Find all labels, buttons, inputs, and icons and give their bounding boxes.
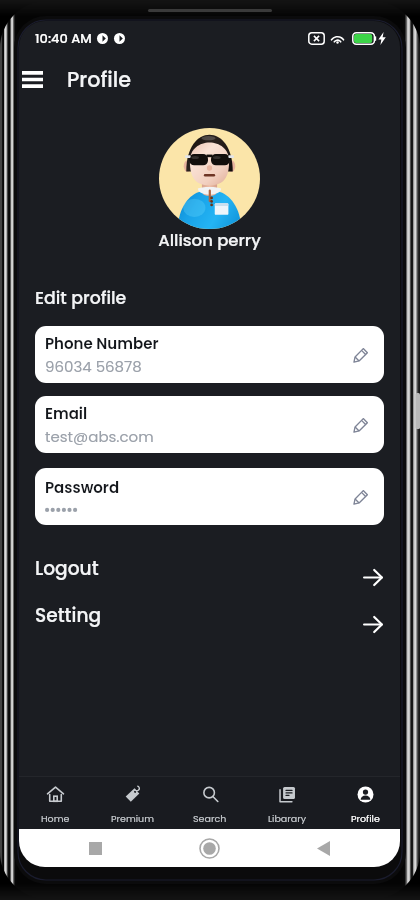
button[interactable]: Email <box>35 396 384 453</box>
button[interactable]: Setting <box>19 598 400 632</box>
staticText: Phone Number <box>45 333 159 354</box>
staticText: Profile <box>351 812 380 825</box>
staticText: Premium <box>111 812 154 825</box>
staticText: Logout <box>35 555 99 581</box>
button[interactable]: Libarary <box>257 777 317 829</box>
staticText: test@abs.com <box>45 426 154 447</box>
button[interactable]: Edit Password <box>347 483 375 511</box>
staticText: 96034 56878 <box>45 356 142 377</box>
staticText: Search <box>193 812 227 825</box>
staticText: 10:40 AM <box>35 29 92 47</box>
button[interactable]: Home <box>25 777 85 829</box>
button[interactable]: Profile <box>335 777 395 829</box>
button[interactable]: Password <box>35 468 384 525</box>
other: Logout, open <box>363 569 383 586</box>
button[interactable]: Logout <box>19 551 400 585</box>
staticText: Libarary <box>268 812 307 825</box>
staticText: Allison perry <box>19 229 400 252</box>
button[interactable]: Search <box>180 777 240 829</box>
staticText: Profile <box>67 65 132 94</box>
staticText: Email <box>45 403 88 424</box>
staticText: Home <box>41 812 70 825</box>
button[interactable]: Premium <box>102 777 162 829</box>
button[interactable]: Open navigation menu <box>19 58 53 100</box>
button[interactable]: Edit Phone Number <box>347 341 375 369</box>
staticText: Edit profile <box>35 286 127 310</box>
other: Setting, open <box>363 616 383 633</box>
button[interactable]: Edit Email <box>347 411 375 439</box>
button[interactable]: Phone Number <box>35 326 384 383</box>
staticText: Password <box>45 477 120 498</box>
staticText: Setting <box>35 602 102 628</box>
